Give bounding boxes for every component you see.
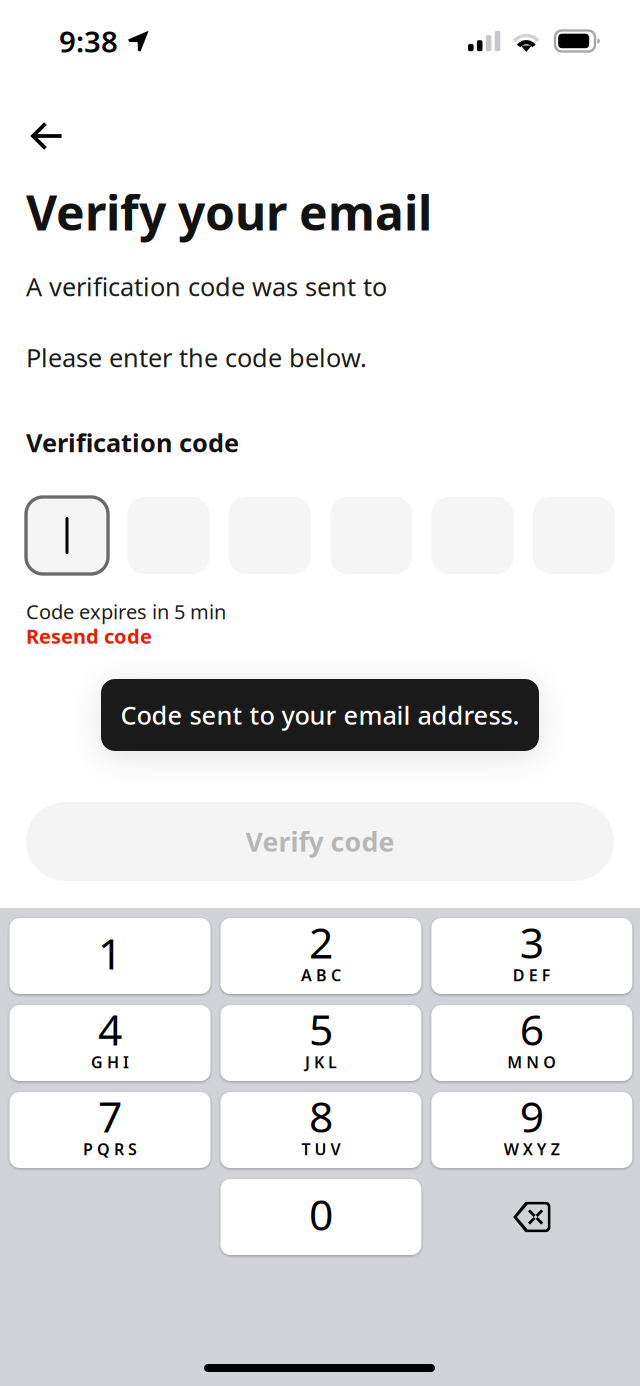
- staticText: Code expires in 5 min: [26, 598, 226, 625]
- button[interactable]: 9: [431, 1092, 632, 1168]
- staticText: 3: [520, 914, 544, 970]
- staticText: M N O: [507, 1051, 556, 1073]
- button[interactable]: 7: [9, 1092, 210, 1168]
- staticText: D E F: [513, 964, 551, 986]
- button[interactable]: 1: [9, 918, 210, 994]
- staticText: 0: [309, 1186, 333, 1242]
- staticText: 7: [98, 1088, 122, 1144]
- button[interactable]: 0: [220, 1179, 421, 1255]
- button[interactable]: 3: [431, 918, 632, 994]
- staticText: G H I: [91, 1051, 129, 1073]
- staticText: A verification code was sent to: [26, 270, 387, 303]
- staticText: J K L: [305, 1051, 337, 1073]
- staticText: Please enter the code below.: [26, 341, 367, 374]
- staticText: 8: [309, 1088, 333, 1144]
- button[interactable]: 5: [220, 1005, 421, 1081]
- button[interactable]: Back: [0, 106, 88, 166]
- staticText: 9:38: [59, 21, 118, 60]
- staticText: 9: [520, 1088, 544, 1144]
- staticText: 5: [309, 1001, 333, 1057]
- staticText: A B C: [301, 964, 341, 986]
- staticText: P Q R S: [83, 1138, 137, 1160]
- button[interactable]: 2: [220, 918, 421, 994]
- staticText: T U V: [301, 1138, 340, 1160]
- staticText: Verify code: [245, 824, 394, 859]
- button[interactable]: Delete: [431, 1179, 632, 1255]
- button[interactable]: 8: [220, 1092, 421, 1168]
- staticText: Verification code: [26, 426, 239, 459]
- button[interactable]: 4: [9, 1005, 210, 1081]
- staticText: Resend code: [26, 623, 152, 649]
- staticText: Code sent to your email address.: [120, 698, 519, 732]
- button[interactable]: 6: [431, 1005, 632, 1081]
- staticText: 2: [309, 914, 333, 970]
- staticText: 1: [98, 925, 122, 981]
- staticText: Verify your email: [26, 180, 432, 244]
- staticText: W X Y Z: [504, 1138, 560, 1160]
- staticText: 4: [98, 1001, 122, 1057]
- button[interactable]: Verify code: [26, 802, 614, 881]
- staticText: 6: [520, 1001, 544, 1057]
- button[interactable]: Resend code: [26, 625, 166, 647]
